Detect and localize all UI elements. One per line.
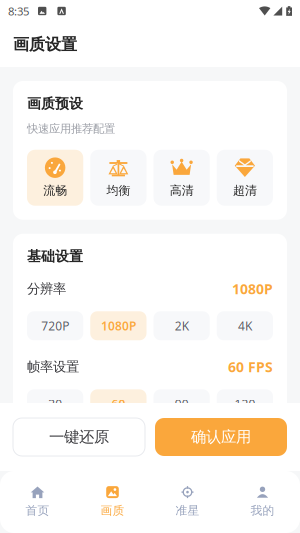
button[interactable]: 2K [153,311,210,340]
staticText: 60 [111,396,125,412]
staticText: 首页 [25,503,49,518]
button[interactable]: 首页 [0,471,75,533]
staticText: 画质设置 [13,34,77,55]
button[interactable]: 高清 [153,150,210,206]
staticText: 720P [41,318,69,334]
staticText: 确认应用 [191,427,251,447]
button[interactable]: 30 [27,389,83,418]
button[interactable]: 1080P [90,311,146,340]
button[interactable]: 4K [217,311,273,340]
staticText: 2K [175,318,189,334]
staticText: 流畅 [43,183,67,198]
staticText: 4K [238,318,252,334]
staticText: 1080P [232,279,273,298]
button[interactable]: 720P [27,311,83,340]
button[interactable]: 一键还原 [13,418,145,456]
staticText: 帧率设置 [27,358,79,375]
staticText: 均衡 [106,183,130,198]
button[interactable]: 流畅 [27,150,83,206]
staticText: 8:35 [8,3,29,19]
button[interactable]: 高质量 [196,466,273,495]
staticText: 30 [48,396,62,412]
button[interactable]: 我的 [225,471,300,533]
button[interactable]: 开启 [111,466,189,495]
button[interactable]: 均衡 [90,150,146,206]
staticText: 画质预设 [27,95,83,112]
button[interactable]: 确认应用 [155,418,287,456]
button[interactable]: 准星 [150,471,225,533]
button[interactable]: 90 [153,389,210,418]
staticText: 快速应用推荐配置 [27,121,115,136]
staticText: 分辨率 [27,280,66,297]
staticText: 90 [175,396,189,412]
staticText: 120 [234,396,255,412]
staticText: 抗锯齿 [27,436,66,453]
button[interactable]: 关闭 [27,466,104,495]
staticText: 准星 [175,503,199,518]
button[interactable]: 60 [90,389,146,418]
staticText: 1080P [101,318,136,334]
staticText: 我的 [250,503,274,518]
button[interactable]: 120 [217,389,273,418]
staticText: 画质 [100,503,124,518]
staticText: 一键还原 [49,427,109,447]
staticText: 超清 [233,183,257,198]
staticText: 开启 [245,435,273,453]
button[interactable]: 超清 [217,150,273,206]
staticText: 60 FPS [228,357,273,376]
staticText: 高清 [170,183,194,198]
staticText: 基础设置 [27,248,83,265]
button[interactable]: 画质 [75,471,150,533]
